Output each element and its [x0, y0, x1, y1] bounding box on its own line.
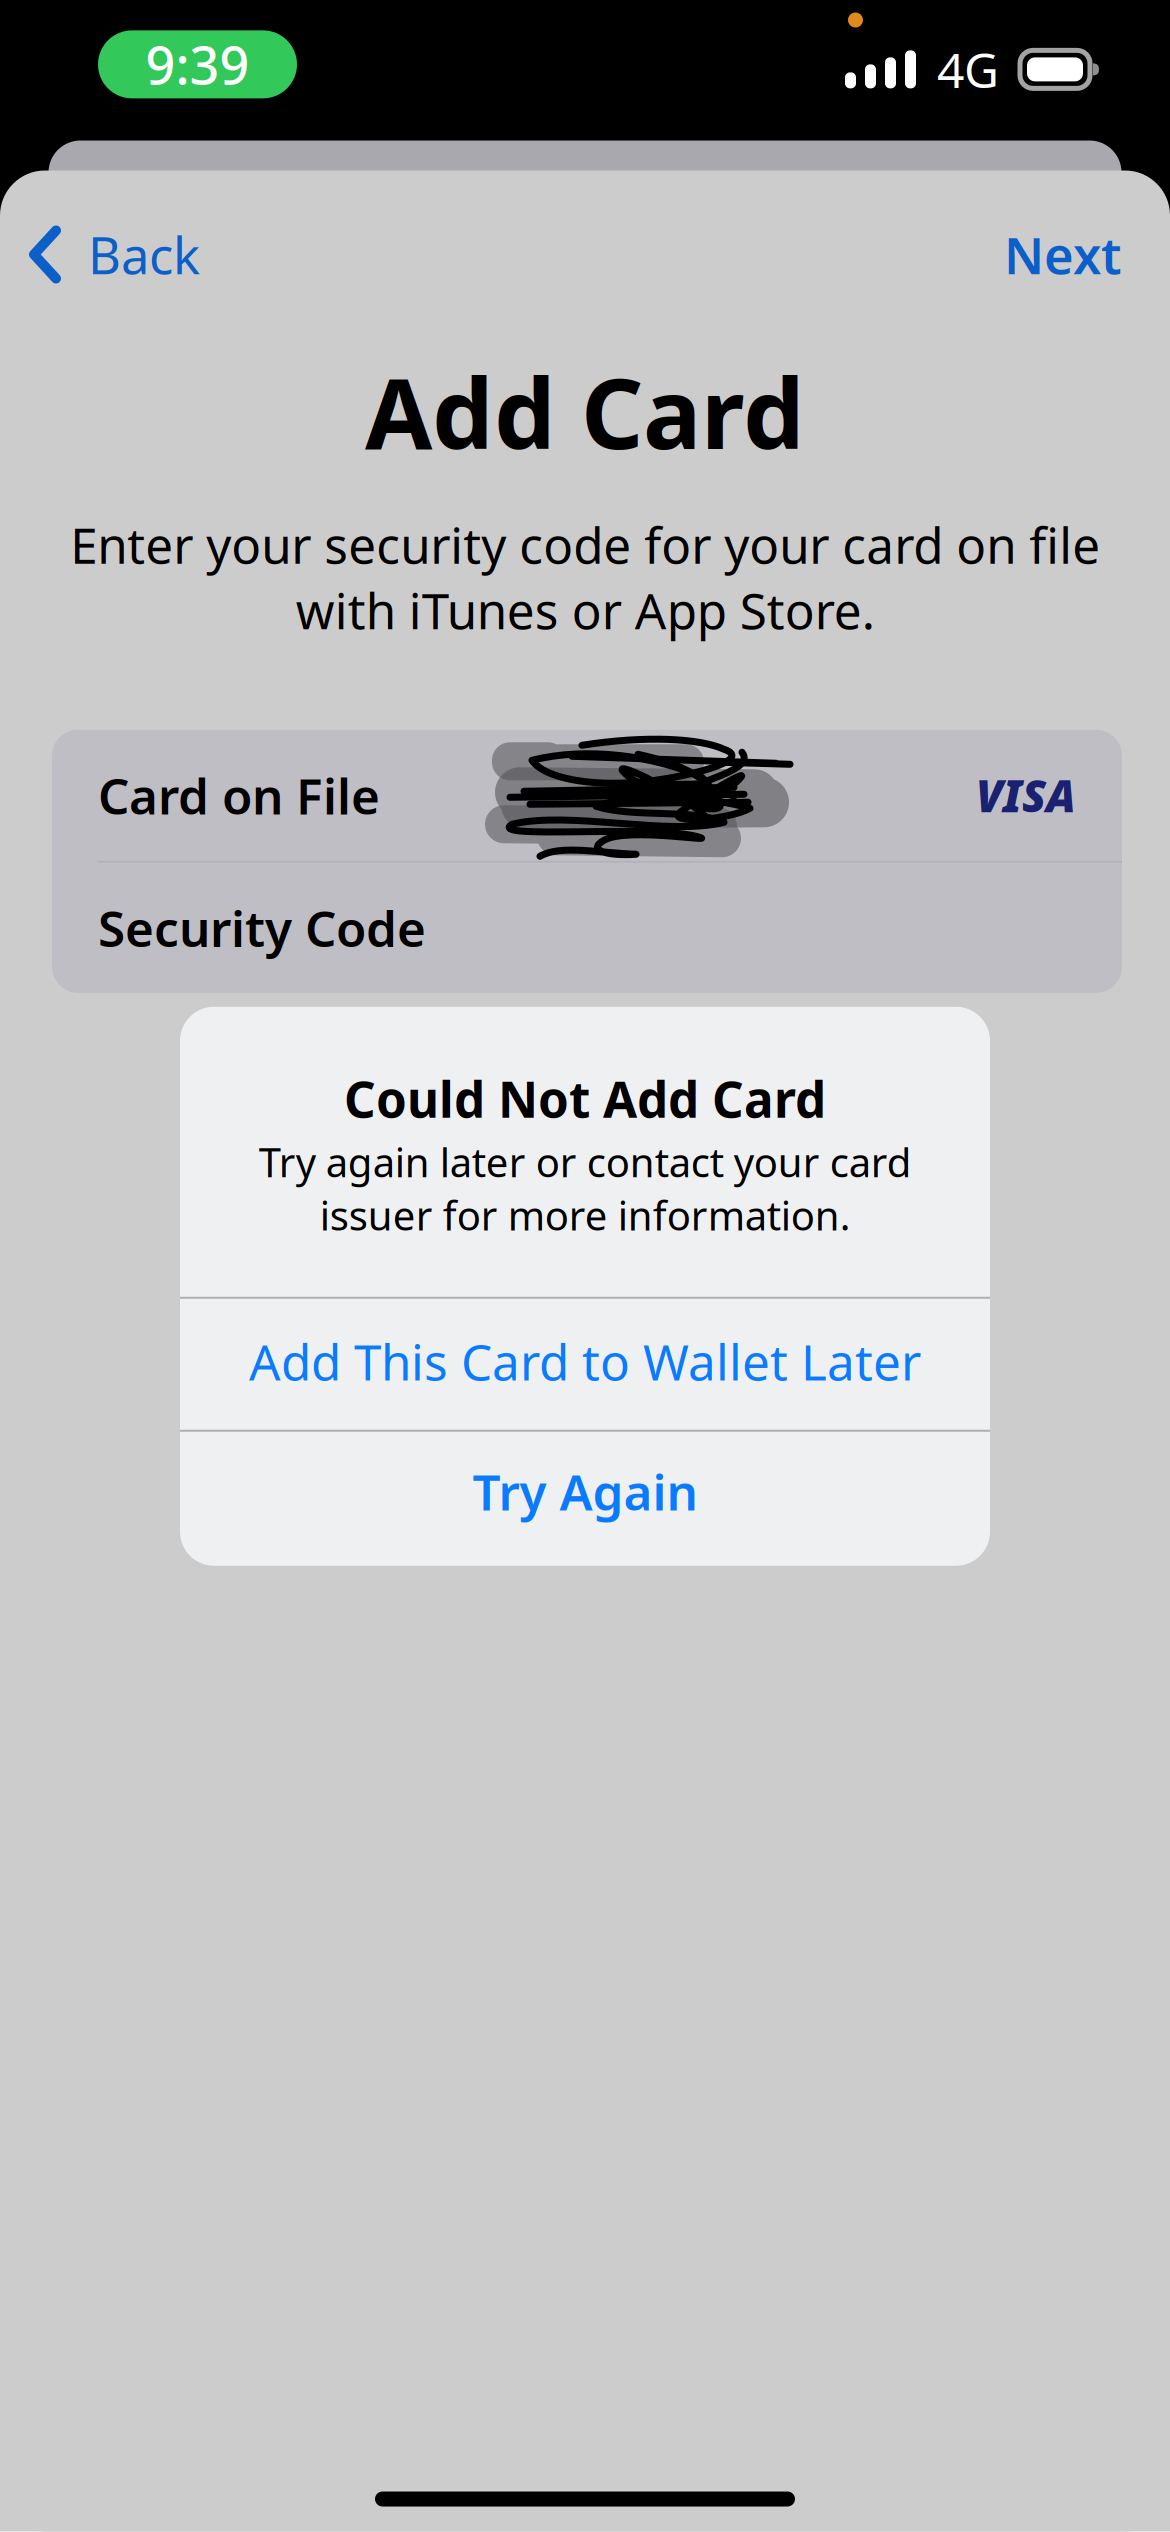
staticText: Next — [1004, 221, 1122, 288]
button[interactable]: Back — [0, 205, 200, 304]
staticText: Enter your security code for your card o… — [70, 512, 1100, 643]
staticText: Add Card — [365, 346, 805, 476]
button[interactable]: Try Again — [180, 1432, 990, 1567]
staticText: Security Code — [98, 895, 426, 960]
staticText: 4G — [937, 37, 999, 101]
staticText: Could Not Add Card — [344, 1066, 826, 1131]
staticText: VISA — [976, 766, 1076, 824]
button[interactable]: Next — [1004, 205, 1170, 304]
staticText: Try again later or contact your card iss… — [258, 1135, 911, 1241]
staticText: Add This Card to Wallet Later — [249, 1328, 921, 1394]
button[interactable]: Add This Card to Wallet Later — [180, 1299, 990, 1430]
staticText: Card on File — [98, 762, 380, 828]
staticText: 9:39 — [145, 30, 249, 99]
staticText: Try Again — [472, 1458, 697, 1524]
staticText: Back — [88, 221, 200, 288]
